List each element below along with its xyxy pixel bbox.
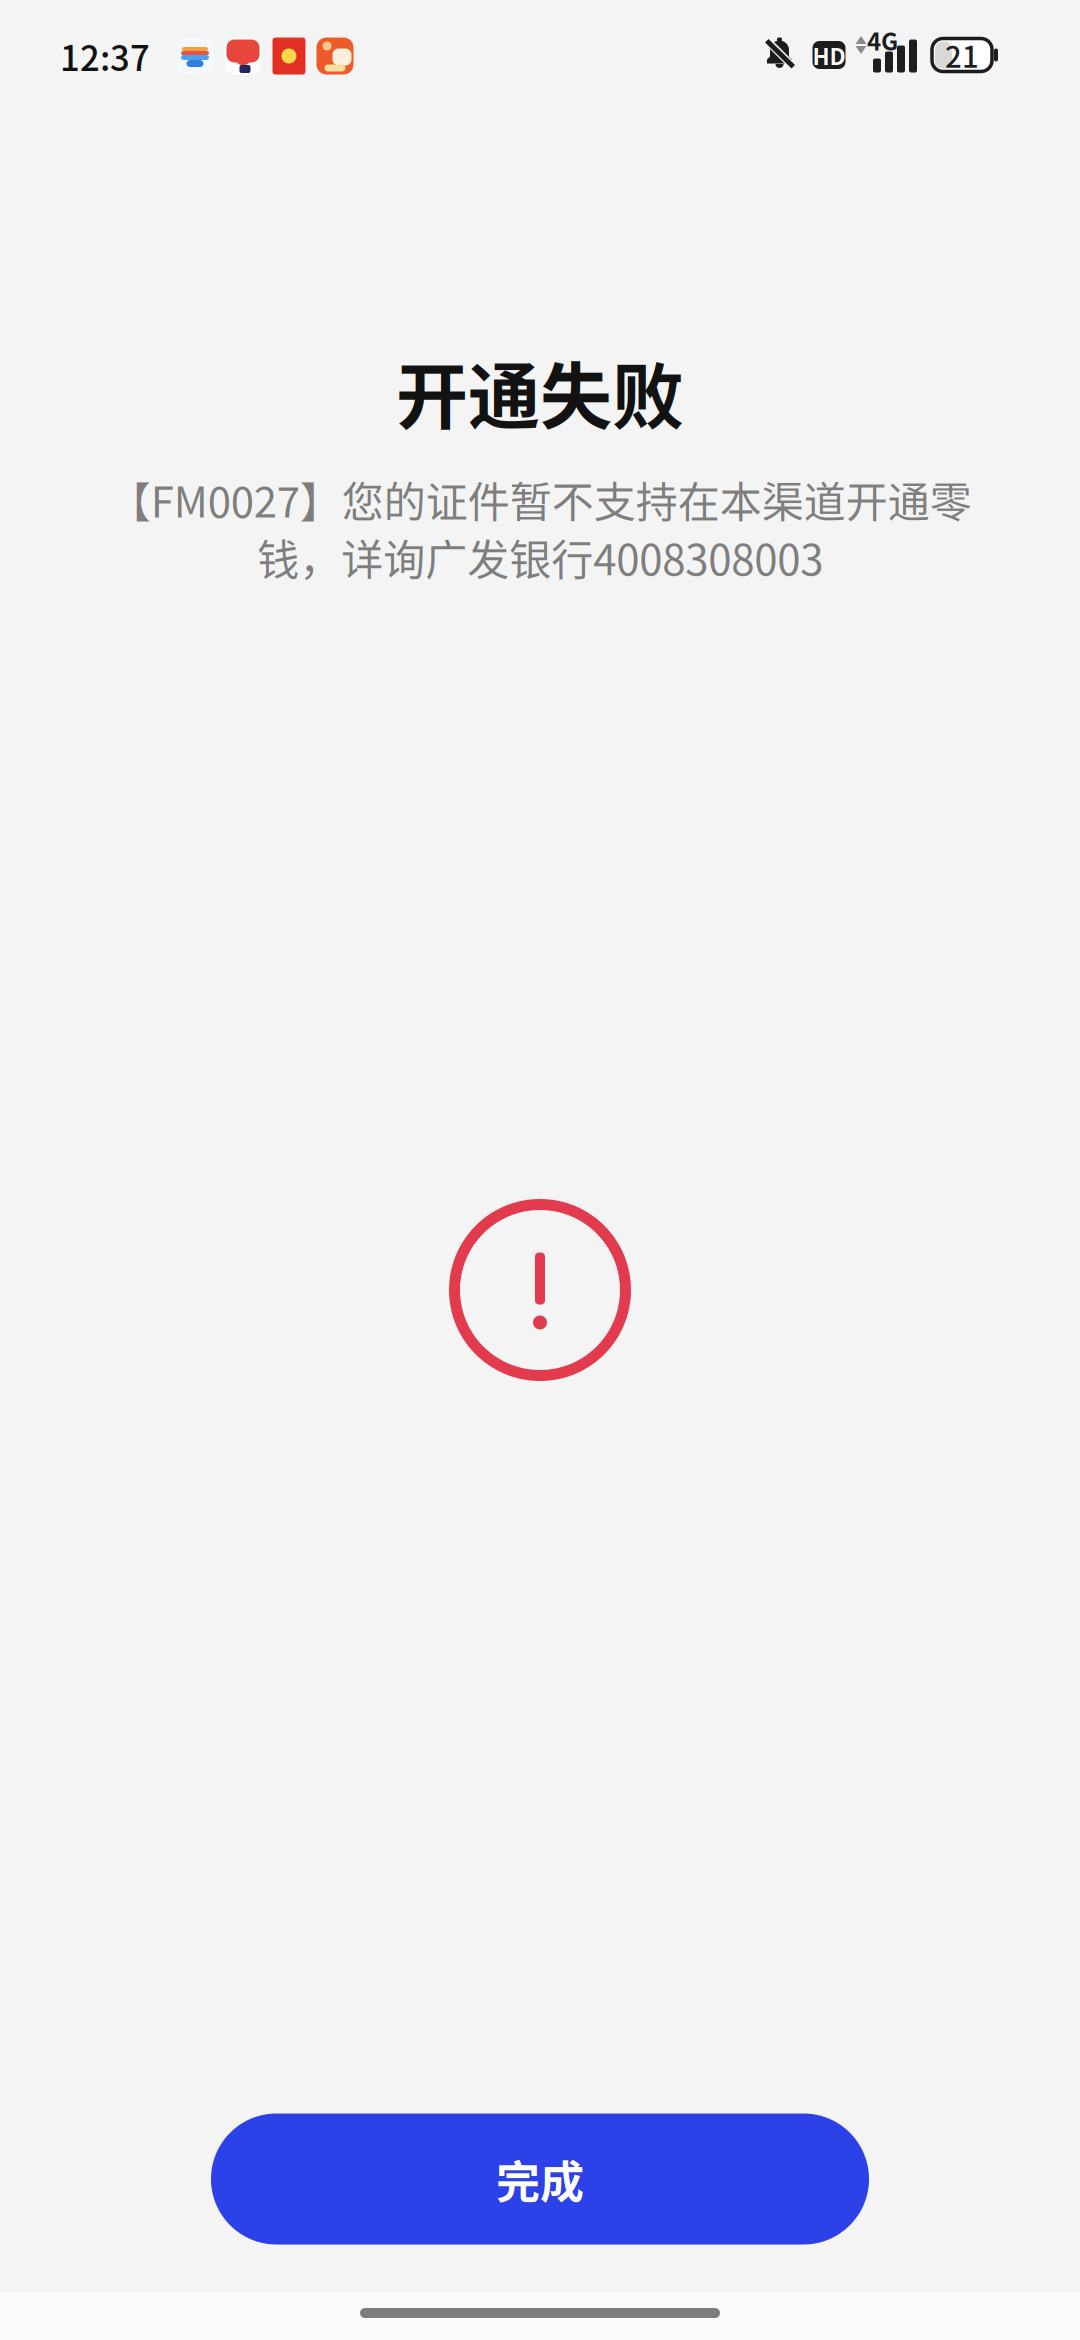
staticText: 【FM0027】您的证件暂不支持在本渠道开通零钱，详询广发银行400830800… [108, 469, 971, 587]
button[interactable]: 完成 [211, 2113, 869, 2244]
staticText: 12:37 [60, 31, 150, 81]
staticText: HD [812, 39, 845, 71]
staticText: 4G [867, 23, 898, 57]
staticText: 开通失败 [396, 339, 684, 443]
staticText: 完成 [496, 2147, 584, 2211]
staticText: 21 [945, 34, 979, 76]
